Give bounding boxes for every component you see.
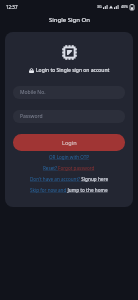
button[interactable]: Login (13, 134, 125, 151)
button[interactable]: OR Login with OTP (49, 151, 90, 162)
staticText: Login to Single sign on account (36, 67, 110, 74)
staticText: Don't have an account? Signup here (30, 176, 109, 182)
staticText: Reset? Forgot password (43, 165, 95, 171)
staticText: Single Sign On (49, 16, 90, 24)
staticText: Skip for now and Jump to the home (30, 187, 108, 193)
staticText: Mobile No. (20, 89, 46, 96)
button[interactable]: Skip for now and Jump to the home (30, 184, 108, 195)
button[interactable]: Mobile No. (13, 86, 125, 99)
staticText: Login (62, 139, 77, 147)
staticText: OR Login with OTP (49, 154, 90, 160)
button[interactable]: Don't have an account? Signup here (30, 173, 109, 184)
staticText: 12:37 (6, 4, 18, 10)
button[interactable]: Reset? Forgot password (43, 162, 95, 173)
staticText: 40% (121, 4, 129, 9)
staticText: 3G (97, 4, 102, 9)
staticText: Password (20, 113, 43, 120)
button[interactable]: Password (13, 110, 125, 123)
